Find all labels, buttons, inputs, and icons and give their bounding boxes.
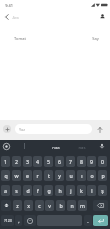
- button[interactable]: e: [23, 170, 32, 181]
- button[interactable]: v: [45, 200, 54, 211]
- staticText: q: [4, 172, 8, 179]
- button[interactable]: b: [56, 200, 65, 211]
- button[interactable]: 8: [77, 156, 86, 167]
- button[interactable]: o: [87, 170, 96, 181]
- staticText: n: [70, 202, 74, 209]
- button[interactable]: ,: [15, 215, 22, 226]
- staticText: s: [15, 187, 18, 194]
- staticText: ş: [101, 187, 104, 194]
- button[interactable]: t: [44, 170, 53, 181]
- button[interactable]: y: [55, 170, 64, 181]
- staticText: ı: [81, 172, 83, 179]
- button[interactable]: .: [84, 215, 92, 226]
- button[interactable]: [93, 215, 108, 226]
- button[interactable]: 6: [55, 156, 64, 167]
- staticText: 5: [47, 158, 50, 165]
- button[interactable]: 1: [1, 156, 10, 167]
- button[interactable]: ?123: [1, 215, 14, 226]
- staticText: 8: [80, 158, 83, 165]
- staticText: 6: [58, 158, 61, 165]
- button[interactable]: u: [66, 170, 75, 181]
- button[interactable]: 3: [23, 156, 32, 167]
- staticText: h: [58, 187, 62, 194]
- button[interactable]: Tomat: [11, 33, 29, 44]
- staticText: d: [26, 187, 30, 194]
- staticText: t: [48, 172, 50, 179]
- button[interactable]: ı: [77, 170, 86, 181]
- button[interactable]: n: [67, 200, 76, 211]
- staticText: .: [87, 217, 89, 224]
- staticText: Yaz: [19, 127, 25, 132]
- staticText: 3: [26, 158, 29, 165]
- button[interactable]: g: [44, 185, 53, 196]
- staticText: 4: [36, 158, 39, 165]
- staticText: c: [38, 202, 41, 209]
- button[interactable]: 0: [98, 156, 107, 167]
- staticText: b: [59, 202, 63, 209]
- staticText: e: [26, 172, 29, 179]
- staticText: 2: [15, 158, 18, 165]
- staticText: ,: [18, 217, 20, 224]
- button[interactable]: Account: [97, 11, 108, 22]
- staticText: u: [69, 172, 73, 179]
- staticText: v: [48, 202, 51, 209]
- staticText: g: [47, 187, 51, 194]
- button[interactable]: 4: [33, 156, 42, 167]
- staticText: f: [37, 187, 39, 194]
- button[interactable]: x: [24, 200, 33, 211]
- button[interactable]: a: [1, 185, 10, 196]
- staticText: Say: [92, 36, 99, 41]
- staticText: 1: [4, 158, 7, 165]
- button[interactable]: h: [55, 185, 64, 196]
- staticText: nas: [76, 144, 88, 150]
- staticText: y: [58, 172, 61, 179]
- button[interactable]: k: [77, 185, 86, 196]
- staticText: ?123: [4, 218, 12, 223]
- staticText: l: [91, 187, 93, 194]
- staticText: 0: [101, 158, 104, 165]
- button[interactable]: Send: [95, 125, 104, 134]
- button[interactable]: Say: [87, 33, 103, 44]
- button[interactable]: s: [12, 185, 21, 196]
- button[interactable]: r: [33, 170, 42, 181]
- staticText: x: [27, 202, 30, 209]
- staticText: p: [101, 172, 105, 179]
- staticText: 9: [90, 158, 93, 165]
- staticText: o: [90, 172, 94, 179]
- button[interactable]: z: [13, 200, 22, 211]
- button[interactable]: Voice input: [97, 141, 106, 150]
- button[interactable]: 2: [12, 156, 21, 167]
- button[interactable]: w: [12, 170, 21, 181]
- button[interactable]: q: [1, 170, 10, 181]
- button[interactable]: Settings: [2, 142, 11, 151]
- staticText: Tomat: [14, 36, 26, 41]
- button[interactable]: Yaz: [15, 124, 92, 134]
- button[interactable]: Back: [1, 11, 13, 23]
- staticText: z: [16, 202, 19, 209]
- staticText: 7: [69, 158, 72, 165]
- button[interactable]: Add: [3, 125, 11, 133]
- staticText: j: [70, 187, 72, 194]
- staticText: 9:41: [5, 3, 13, 8]
- button[interactable]: [93, 200, 108, 211]
- staticText: Ara: [12, 15, 19, 20]
- button[interactable]: d: [23, 185, 32, 196]
- button[interactable]: 7: [66, 156, 75, 167]
- button[interactable]: l: [87, 185, 96, 196]
- staticText: w: [14, 172, 19, 179]
- staticText: r: [36, 172, 39, 179]
- button[interactable]: f: [33, 185, 42, 196]
- staticText: a: [4, 187, 7, 194]
- button[interactable]: ş: [98, 185, 107, 196]
- staticText: naa: [50, 144, 62, 150]
- button[interactable]: j: [66, 185, 75, 196]
- button[interactable]: m: [78, 200, 87, 211]
- button[interactable]: p: [98, 170, 107, 181]
- button[interactable]: c: [35, 200, 44, 211]
- button[interactable]: [24, 215, 36, 226]
- button[interactable]: 5: [44, 156, 53, 167]
- button[interactable]: 9: [87, 156, 96, 167]
- staticText: m: [80, 202, 85, 209]
- button[interactable]: [1, 200, 11, 211]
